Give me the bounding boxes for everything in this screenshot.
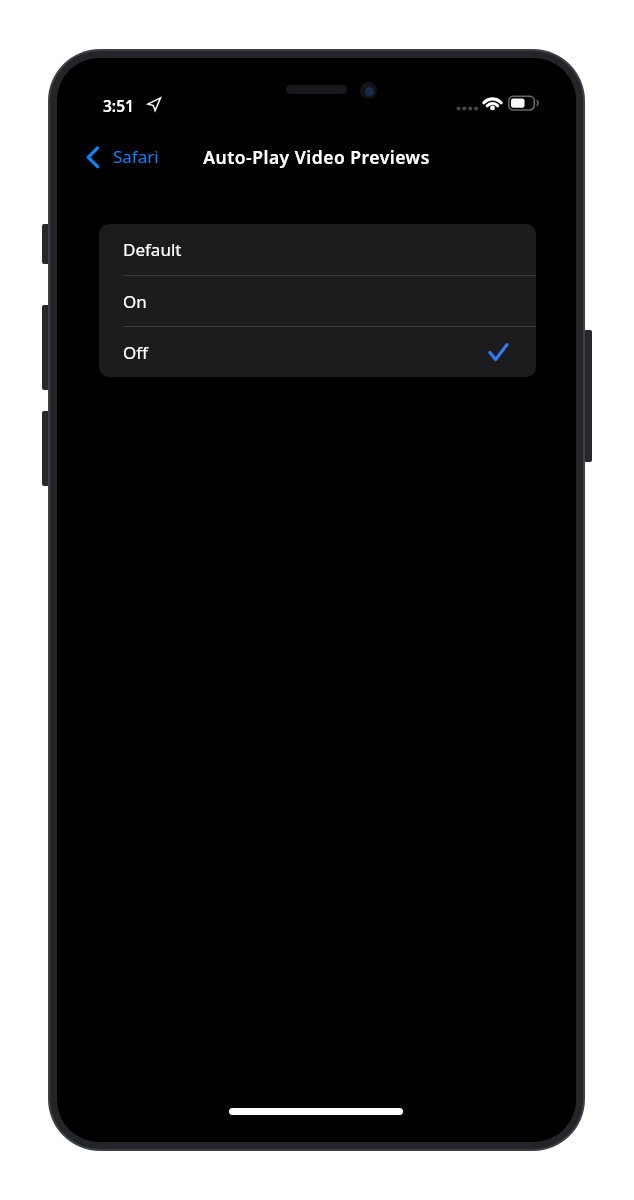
staticText: Auto-Play Video Previews	[203, 145, 430, 169]
staticText: Safari	[113, 145, 159, 168]
button[interactable]: Safari	[84, 143, 174, 171]
staticText: 3:51	[103, 95, 134, 116]
button[interactable]: Off	[99, 327, 536, 377]
staticText: Default	[123, 238, 182, 261]
button[interactable]: On	[99, 276, 536, 326]
button[interactable]: Default	[99, 224, 536, 275]
staticText: On	[123, 290, 147, 313]
staticText: Off	[123, 341, 148, 364]
